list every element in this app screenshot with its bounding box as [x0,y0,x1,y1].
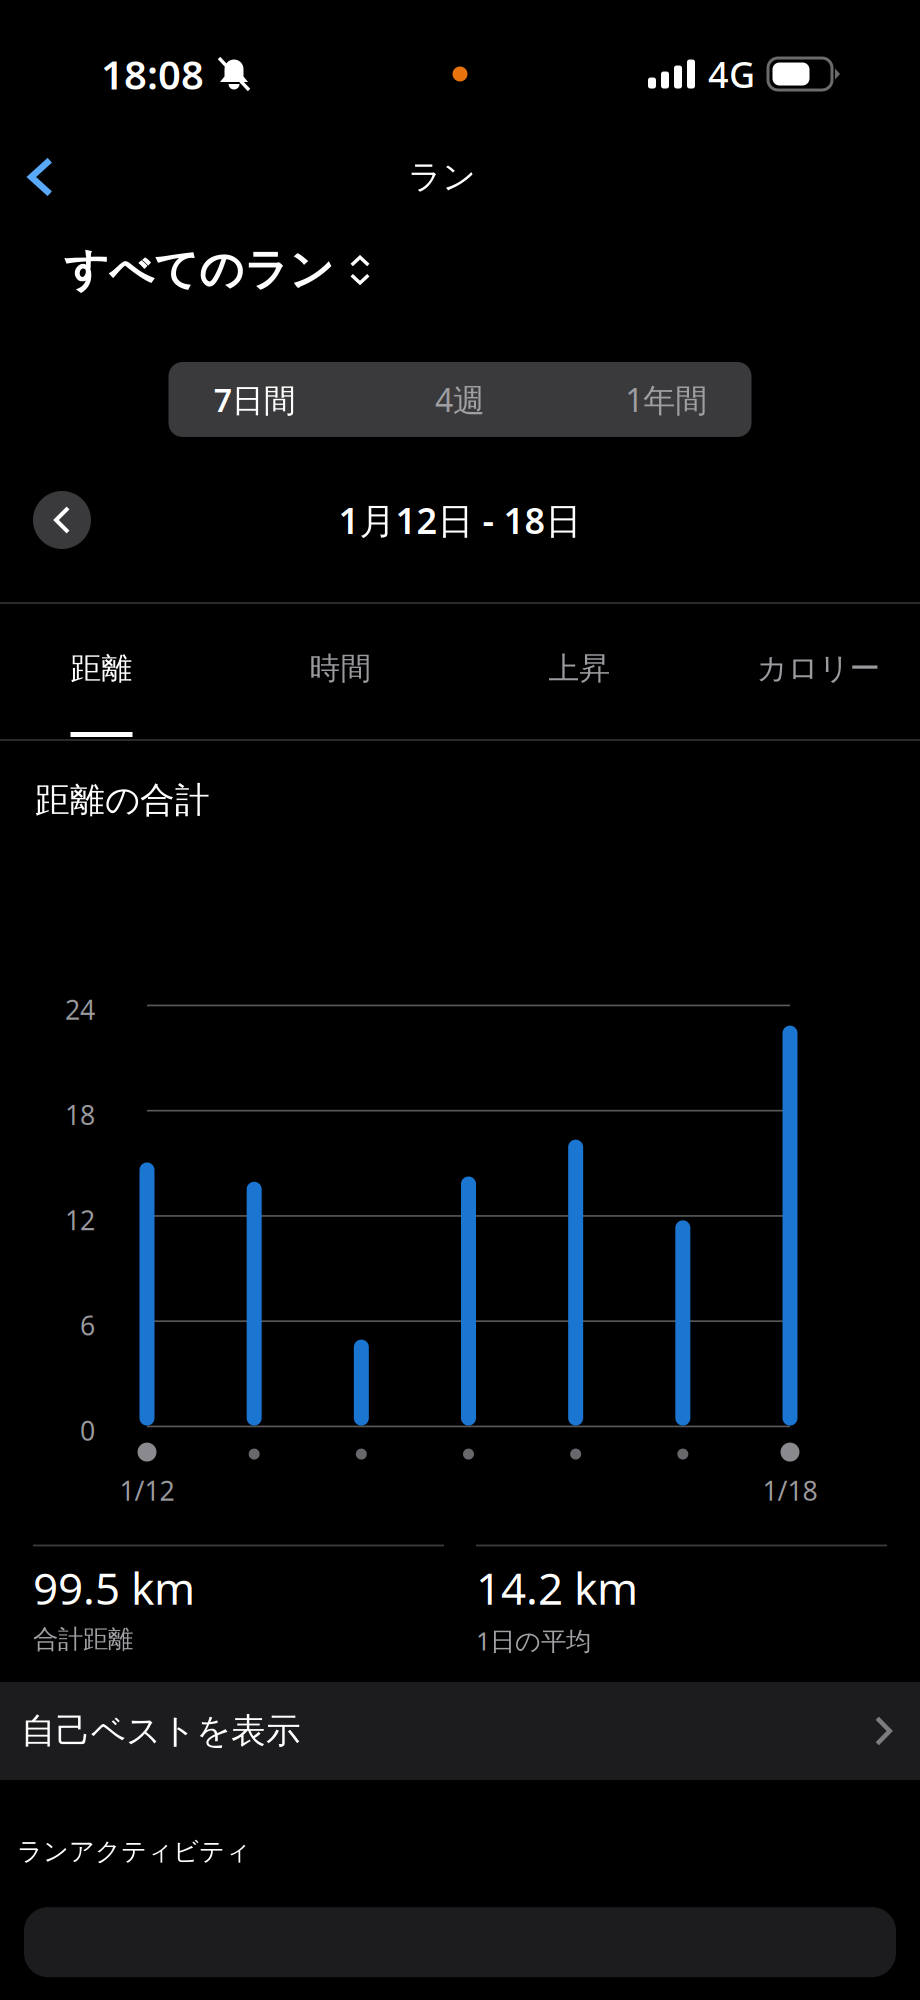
staticText: 1月12日 - 18日 [338,496,581,544]
staticText: 99.5 km [33,1558,195,1617]
staticText: 距離の合計 [35,779,210,822]
staticText: カロリー [756,650,880,687]
staticText: 18 [65,1097,95,1132]
staticText: 上昇 [548,650,610,687]
staticText: すべてのラン [64,243,334,297]
staticText: 合計距離 [33,1624,133,1655]
staticText: 24 [65,992,95,1027]
staticText: 12 [65,1202,95,1237]
button[interactable]: 4週 [363,362,557,437]
staticText: 18:08 [101,47,204,100]
button[interactable]: 自己ベストを表示 [0,1682,920,1780]
button[interactable]: 上昇 [460,604,699,739]
staticText: ラン [408,156,476,197]
button[interactable]: 7日間 [168,362,363,437]
staticText: 1年間 [625,378,707,421]
staticText: 1/18 [762,1473,817,1508]
staticText: 4週 [435,378,485,421]
button[interactable]: カロリー [699,604,920,739]
staticText: 0 [80,1413,95,1448]
button[interactable]: Previous week [0,485,91,555]
button[interactable]: すべてのラン [0,229,370,311]
button[interactable]: 時間 [221,604,460,739]
staticText: ランアクティビティ [17,1836,251,1867]
staticText: 6 [80,1307,95,1343]
staticText: 4G [708,50,755,98]
staticText: 1/12 [119,1473,174,1508]
button[interactable]: 1年間 [557,362,751,437]
staticText: 7日間 [214,378,296,421]
button[interactable]: 距離 [0,604,221,739]
staticText: 1日の平均 [476,1624,591,1657]
staticText: 自己ベストを表示 [21,1710,301,1752]
staticText: 時間 [309,650,371,687]
button[interactable]: Back [0,140,79,214]
staticText: 距離 [70,650,132,687]
staticText: 14.2 km [476,1558,638,1617]
